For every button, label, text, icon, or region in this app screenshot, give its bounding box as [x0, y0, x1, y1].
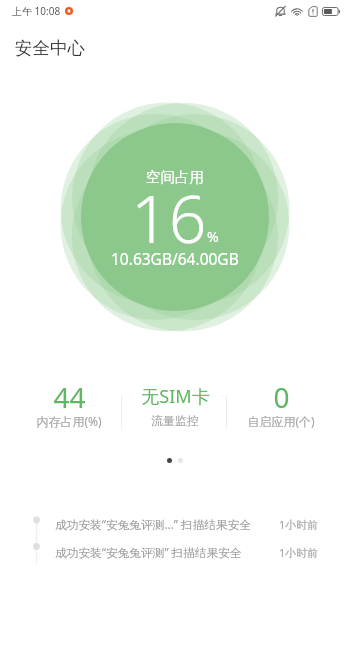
staticText: 无SIM卡 — [141, 384, 210, 409]
staticText: 安全中心 — [15, 37, 85, 59]
staticText: 10.63GB/64.00GB — [111, 248, 239, 269]
staticText: 空间占用 — [146, 168, 204, 186]
staticText: 1小时前 — [279, 517, 319, 532]
staticText: 44 — [53, 378, 86, 416]
staticText: 1小时前 — [279, 545, 319, 560]
staticText: 0 — [273, 378, 290, 416]
button[interactable]: 无SIM卡 — [122, 376, 228, 436]
button[interactable]: 0 — [228, 376, 334, 436]
button[interactable]: 成功安装“安兔兔评测...” 扫描结果安全 — [0, 513, 350, 535]
button[interactable]: 成功安装“安兔兔评测” 扫描结果安全 — [0, 541, 350, 563]
staticText: 成功安装“安兔兔评测” 扫描结果安全 — [55, 544, 242, 560]
staticText: 上午 10:08 — [12, 4, 61, 18]
staticText: 内存占用(%) — [36, 413, 102, 429]
button[interactable]: 44 — [16, 376, 122, 436]
staticText: 成功安装“安兔兔评测...” 扫描结果安全 — [55, 516, 252, 532]
staticText: % — [207, 227, 219, 246]
staticText: 流量监控 — [151, 413, 199, 428]
button[interactable]: 空间占用 16% 10.63GB/64.00GB — [81, 123, 269, 311]
staticText: 16 — [131, 172, 207, 262]
staticText: 自启应用(个) — [247, 413, 315, 429]
